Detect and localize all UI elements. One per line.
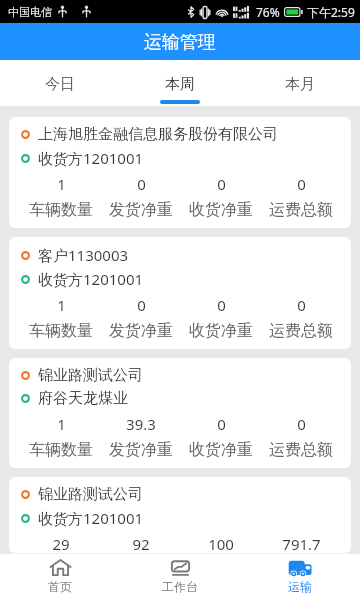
button[interactable]: 上海旭胜金融信息服务股份有限公司: [9, 117, 351, 228]
staticText: 下午2:59: [307, 4, 355, 20]
staticText: 收货净重: [189, 321, 253, 341]
staticText: 运输管理: [144, 31, 216, 54]
staticText: 今日: [45, 75, 75, 94]
staticText: 车辆数量: [29, 440, 93, 460]
staticText: 92: [132, 534, 150, 553]
staticText: 0: [297, 295, 306, 315]
staticText: 0: [297, 414, 306, 434]
staticText: 1: [57, 295, 66, 315]
staticText: 收货方1201001: [38, 269, 144, 289]
staticText: 0: [217, 174, 226, 194]
staticText: 首页: [48, 579, 72, 594]
staticText: 收货方1201001: [38, 508, 144, 528]
staticText: 0: [137, 174, 146, 194]
button[interactable]: 锦业路测试公司: [9, 358, 351, 468]
button[interactable]: 首页: [0, 553, 120, 600]
staticText: 发货净重: [109, 321, 173, 341]
staticText: 本周: [165, 75, 195, 94]
staticText: 车辆数量: [29, 200, 93, 220]
button[interactable]: 锦业路测试公司: [9, 477, 351, 553]
staticText: 0: [217, 295, 226, 315]
staticText: 1: [57, 174, 66, 194]
staticText: 76%: [256, 4, 280, 20]
button[interactable]: 客户1130003: [9, 237, 351, 349]
staticText: 运输: [288, 579, 312, 594]
staticText: 0: [137, 295, 146, 315]
staticText: 上海旭胜金融信息服务股份有限公司: [38, 125, 278, 144]
button[interactable]: 工作台: [120, 553, 240, 600]
button[interactable]: 本周: [120, 60, 240, 106]
staticText: 0: [217, 414, 226, 434]
staticText: 791.7: [282, 534, 321, 553]
staticText: 本月: [285, 75, 315, 94]
staticText: 0: [297, 174, 306, 194]
staticText: 运费总额: [269, 440, 333, 460]
button[interactable]: 今日: [0, 60, 120, 106]
staticText: 锦业路测试公司: [38, 366, 143, 385]
staticText: 1: [57, 414, 66, 434]
staticText: 发货净重: [109, 440, 173, 460]
staticText: 收货方1201001: [38, 148, 144, 168]
staticText: 100: [208, 534, 234, 553]
staticText: 车辆数量: [29, 321, 93, 341]
staticText: 府谷天龙煤业: [38, 389, 128, 408]
staticText: 运费总额: [269, 200, 333, 220]
staticText: 39.3: [126, 414, 156, 434]
staticText: 工作台: [162, 579, 198, 594]
staticText: 客户1130003: [38, 245, 129, 265]
staticText: 运费总额: [269, 321, 333, 341]
button[interactable]: 运输: [240, 553, 360, 600]
staticText: 发货净重: [109, 200, 173, 220]
staticText: 29: [52, 534, 70, 553]
button[interactable]: 本月: [240, 60, 360, 106]
staticText: 收货净重: [189, 200, 253, 220]
staticText: 中国电信: [8, 5, 52, 19]
staticText: 锦业路测试公司: [38, 485, 143, 504]
staticText: 收货净重: [189, 440, 253, 460]
